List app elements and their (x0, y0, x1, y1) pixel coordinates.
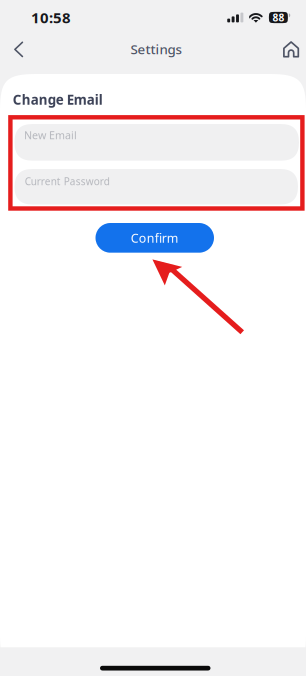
staticText: Settings (130, 40, 181, 58)
button[interactable]: New Email (14, 124, 299, 161)
button[interactable]: Home (272, 35, 306, 74)
staticText: Change Email (13, 90, 103, 109)
staticText: Current Password (25, 174, 110, 188)
staticText: 10:58 (31, 7, 71, 28)
button[interactable]: Confirm (95, 223, 214, 253)
staticText: New Email (24, 128, 77, 142)
staticText: Confirm (131, 229, 179, 246)
button[interactable]: Back (0, 35, 37, 74)
staticText: 88 (272, 11, 284, 24)
